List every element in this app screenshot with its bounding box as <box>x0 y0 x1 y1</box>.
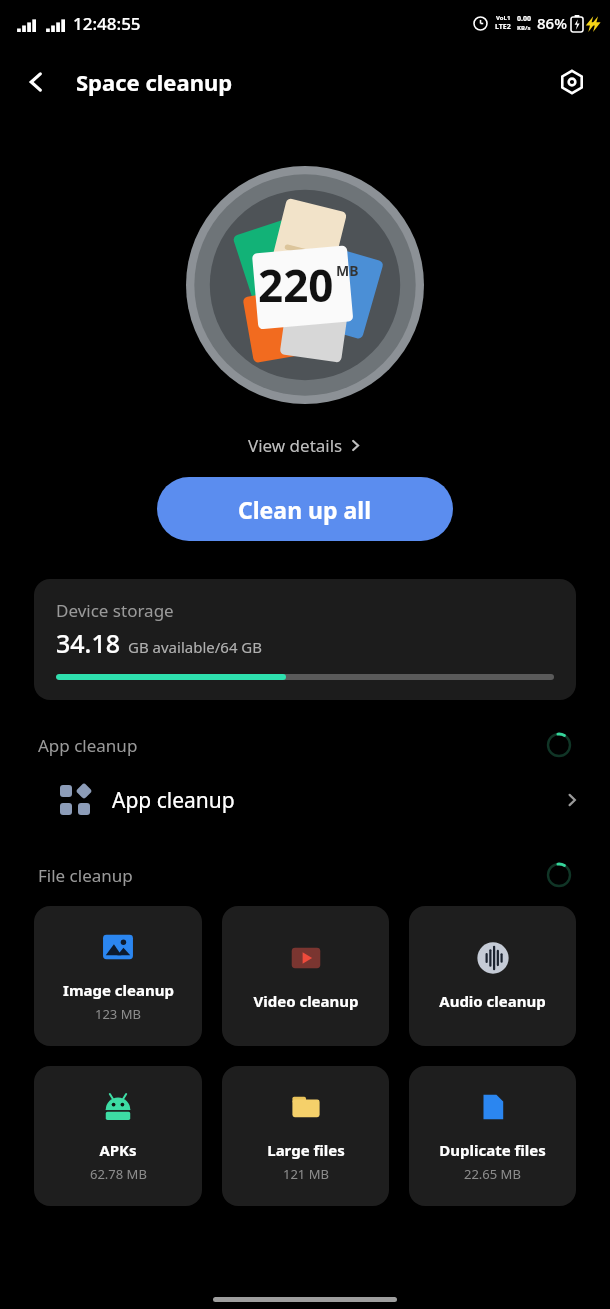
staticText: 0.00 <box>517 14 531 24</box>
staticText: APKs <box>99 1140 137 1160</box>
button[interactable]: Settings <box>550 60 594 104</box>
staticText: Audio cleanup <box>439 991 546 1011</box>
button[interactable]: Clean up all <box>157 477 453 541</box>
staticText: 220 <box>258 255 334 315</box>
staticText: 34.18 <box>56 626 121 660</box>
button[interactable]: Image cleanup <box>34 906 202 1046</box>
staticText: MB <box>336 261 359 280</box>
staticText: 12:48:55 <box>73 12 141 35</box>
staticText: Clean up all <box>238 494 372 525</box>
staticText: Device storage <box>56 599 174 622</box>
staticText: File cleanup <box>38 864 133 887</box>
button[interactable]: View details <box>240 430 370 461</box>
staticText: Image cleanup <box>63 980 174 1000</box>
staticText: KB/s <box>517 24 531 32</box>
staticText: View details <box>248 434 343 457</box>
staticText: VoL1 <box>496 14 511 22</box>
staticText: GB available/64 GB <box>128 637 263 657</box>
staticText: 86% <box>537 13 567 33</box>
staticText: 22.65 MB <box>464 1165 521 1183</box>
button[interactable]: Video cleanup <box>222 906 389 1046</box>
button[interactable]: Large files <box>222 1066 389 1206</box>
staticText: 121 MB <box>283 1165 329 1183</box>
button[interactable]: Back <box>14 60 58 104</box>
staticText: 123 MB <box>95 1005 141 1023</box>
button[interactable]: Device storage <box>34 579 576 700</box>
staticText: Duplicate files <box>439 1140 546 1160</box>
button[interactable]: App cleanup <box>0 768 610 832</box>
staticText: App cleanup <box>38 734 138 757</box>
staticText: Large files <box>267 1140 345 1160</box>
staticText: App cleanup <box>112 786 235 815</box>
button[interactable]: Audio cleanup <box>409 906 576 1046</box>
button[interactable]: Duplicate files <box>409 1066 576 1206</box>
staticText: Space cleanup <box>76 67 233 97</box>
staticText: LTE2 <box>495 22 511 32</box>
button[interactable]: APKs <box>34 1066 202 1206</box>
staticText: Video cleanup <box>253 991 359 1011</box>
staticText: 62.78 MB <box>90 1165 147 1183</box>
